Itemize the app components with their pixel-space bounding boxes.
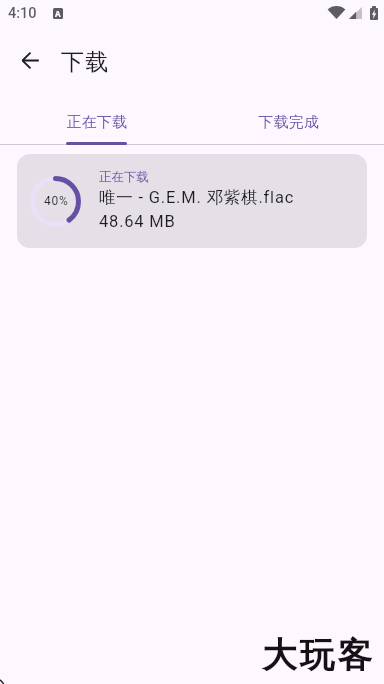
other: Wi-Fi (328, 6, 345, 19)
button[interactable]: Back (14, 44, 46, 76)
staticText: A (55, 8, 61, 19)
other: Battery charging (370, 6, 378, 20)
button[interactable]: 40% (17, 154, 367, 248)
staticText: 48.64 MB (99, 212, 176, 231)
other: Mobile signal (349, 7, 362, 19)
staticText: 唯一 - G.E.M. 邓紫棋.flac (99, 187, 295, 208)
staticText: 4:10 (8, 5, 37, 22)
staticText: 下载完成 (258, 113, 320, 132)
button[interactable]: 下载完成 (193, 100, 384, 145)
staticText: 40% (44, 194, 69, 208)
staticText: 正在下载 (66, 113, 128, 132)
staticText: 下载 (60, 48, 109, 77)
staticText: 正在下载 (99, 169, 149, 185)
button[interactable]: 正在下载 (1, 100, 193, 145)
staticText: 大玩客 (262, 634, 376, 677)
